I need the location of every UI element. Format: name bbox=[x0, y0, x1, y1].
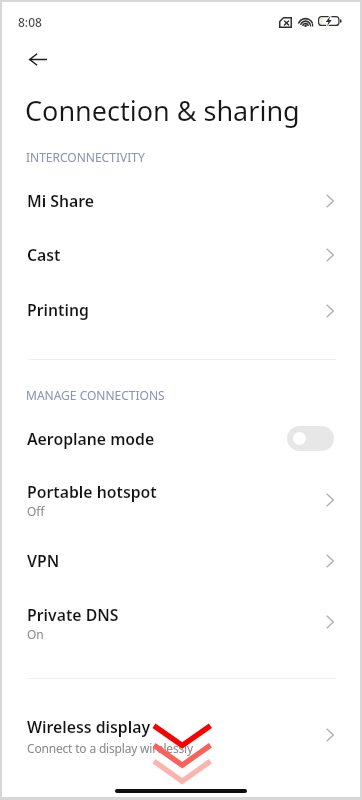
button[interactable]: Back bbox=[22, 43, 54, 75]
button[interactable]: Cast bbox=[2, 228, 360, 282]
staticText: On bbox=[27, 626, 44, 642]
staticText: Printing bbox=[27, 299, 89, 321]
staticText: Off bbox=[27, 503, 45, 519]
button[interactable]: VPN bbox=[2, 534, 360, 588]
staticText: Mi Share bbox=[27, 190, 95, 212]
staticText: 8:08 bbox=[18, 14, 42, 30]
button[interactable]: Private DNS bbox=[2, 592, 360, 652]
button[interactable]: Wireless display bbox=[2, 704, 360, 766]
button[interactable]: Printing bbox=[2, 283, 360, 338]
staticText: Connection & sharing bbox=[25, 92, 300, 129]
staticText: Cast bbox=[27, 244, 61, 266]
staticText: Private DNS bbox=[27, 604, 119, 626]
staticText: MANAGE CONNECTIONS bbox=[26, 387, 165, 403]
staticText: Aeroplane mode bbox=[27, 428, 155, 450]
staticText: VPN bbox=[27, 550, 60, 572]
staticText: INTERCONNECTIVITY bbox=[26, 149, 145, 165]
button[interactable]: Mi Share bbox=[2, 174, 360, 228]
button[interactable]: Portable hotspot bbox=[2, 470, 360, 530]
staticText: Portable hotspot bbox=[27, 481, 157, 503]
staticText: Wireless display bbox=[27, 716, 151, 738]
button[interactable]: Aeroplane mode bbox=[2, 412, 360, 466]
staticText: Connect to a display wirelessly bbox=[27, 740, 193, 756]
